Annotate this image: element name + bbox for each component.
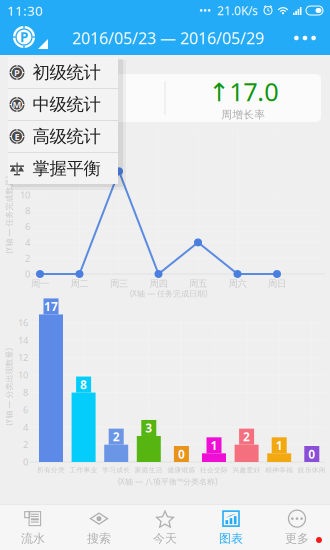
staticText: M xyxy=(12,98,21,111)
staticText: 娱乐休闲 xyxy=(298,466,326,474)
staticText: 兴趣爱好 xyxy=(233,466,261,474)
staticText: 10 xyxy=(20,189,30,201)
button[interactable]: 更多 xyxy=(264,505,330,550)
staticText: 14 xyxy=(18,334,28,346)
staticText: ↑17.0 xyxy=(208,75,278,108)
staticText: 周一 xyxy=(31,278,49,289)
staticText: 0 xyxy=(23,456,28,468)
staticText: 4 xyxy=(25,236,30,248)
button[interactable]: More options xyxy=(280,21,330,55)
staticText: 16 xyxy=(18,316,28,329)
staticText: 周五 xyxy=(189,278,207,289)
staticText: 初级统计 xyxy=(32,62,100,83)
staticText: 今天 xyxy=(153,531,177,546)
staticText: 周二 xyxy=(70,278,88,289)
button[interactable]: 图表 xyxy=(198,505,264,550)
staticText: 6 xyxy=(25,220,30,233)
staticText: 8 xyxy=(23,386,28,398)
staticText: 2 xyxy=(23,438,28,451)
staticText: 搜索 xyxy=(87,531,111,546)
staticText: P xyxy=(20,28,28,46)
staticText: (Y轴 — 分类出现数量) xyxy=(0,382,47,392)
staticText: 8 xyxy=(80,377,87,392)
staticText: 掌握平衡 xyxy=(32,158,100,179)
button[interactable]: M xyxy=(1,89,124,120)
staticText: 10 xyxy=(18,369,28,381)
staticText: P xyxy=(14,66,20,79)
staticText: 周四 xyxy=(149,278,167,289)
staticText: 流水 xyxy=(21,531,45,546)
staticText: (X轴 — 八项平衡™分类名称) xyxy=(118,476,217,487)
button[interactable]: E xyxy=(1,121,124,152)
staticText: 高级统计 xyxy=(32,126,100,147)
staticText: 周三 xyxy=(110,278,128,289)
staticText: 2 xyxy=(113,429,120,445)
staticText: 2.43 xyxy=(62,75,111,108)
staticText: E xyxy=(14,130,19,143)
staticText: 2016/05/23 — 2016/05/29 xyxy=(72,27,264,49)
staticText: 工作事业 xyxy=(70,466,98,474)
staticText: 21.0K/s xyxy=(217,2,258,18)
staticText: 社会交际 xyxy=(200,466,228,474)
staticText: 中级统计 xyxy=(32,94,100,115)
staticText: 0 xyxy=(25,268,30,280)
button[interactable]: 搜索 xyxy=(66,505,132,550)
button[interactable]: P xyxy=(1,57,124,88)
staticText: 11:30 xyxy=(7,2,43,19)
staticText: (X轴 — 任务完成日期) xyxy=(130,288,207,299)
staticText: 0 xyxy=(178,446,185,462)
staticText: 12 xyxy=(18,351,28,364)
staticText: 精神幸福 xyxy=(265,466,293,474)
staticText: 更多 xyxy=(285,531,309,546)
button[interactable]: 掌握平衡 xyxy=(1,153,124,184)
staticText: 家庭生活 xyxy=(135,466,163,474)
staticText: ••• xyxy=(199,3,211,18)
staticText: 2 xyxy=(243,429,250,445)
staticText: 图表 xyxy=(219,531,243,546)
staticText: 周六 xyxy=(228,278,246,289)
button[interactable]: 今天 xyxy=(132,505,198,550)
staticText: 健康锻炼 xyxy=(167,466,195,474)
staticText: 0 xyxy=(308,446,315,462)
staticText: 学习成长 xyxy=(102,466,130,474)
staticText: 周增长率 xyxy=(221,108,265,121)
staticText: 3 xyxy=(145,420,152,436)
staticText: 周日 xyxy=(268,278,286,289)
button[interactable]: 流水 xyxy=(0,505,66,550)
staticText: 4 xyxy=(23,421,28,433)
staticText: (Y轴 — 任务完成数量) xyxy=(0,210,47,220)
staticText: 8 xyxy=(25,204,30,217)
staticText: 1 xyxy=(210,437,217,453)
staticText: 本周均数 xyxy=(65,108,109,121)
staticText: 17 xyxy=(44,298,58,314)
staticText: 6 xyxy=(23,403,28,416)
staticText: 1 xyxy=(276,437,283,453)
staticText: 2 xyxy=(25,252,30,264)
staticText: 所有分类 xyxy=(37,466,65,474)
button[interactable]: Statistics level xyxy=(0,21,56,55)
